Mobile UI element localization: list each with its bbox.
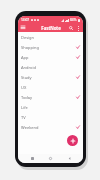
- button[interactable]: Weekend: [18, 122, 83, 132]
- button[interactable]: Design: [18, 32, 83, 42]
- staticText: Weekend: [21, 125, 76, 130]
- staticText: Android: [21, 65, 80, 70]
- button[interactable]: Today: [18, 92, 83, 102]
- button[interactable]: Back: [65, 154, 74, 163]
- button[interactable]: Open navigation menu: [18, 23, 27, 32]
- button[interactable]: Study: [18, 72, 83, 82]
- staticText: Design: [21, 35, 80, 40]
- staticText: Life: [21, 105, 80, 110]
- button[interactable]: Shopping: [18, 42, 83, 52]
- staticText: 14:07: [21, 18, 30, 22]
- staticText: 84%: [70, 18, 77, 22]
- button[interactable]: Home: [46, 154, 55, 163]
- staticText: Today: [21, 95, 76, 100]
- button[interactable]: UX: [18, 82, 83, 92]
- button[interactable]: TV: [18, 112, 83, 122]
- staticText: Shopping: [21, 45, 76, 50]
- staticText: App: [21, 55, 76, 60]
- staticText: Study: [21, 75, 76, 80]
- staticText: UX: [21, 85, 80, 90]
- button[interactable]: Life: [18, 102, 83, 112]
- button[interactable]: Android: [18, 62, 83, 72]
- button[interactable]: Search: [67, 24, 75, 32]
- staticText: TV: [21, 115, 80, 120]
- button[interactable]: Recent apps: [28, 154, 37, 163]
- staticText: FastNote: [41, 25, 61, 31]
- button[interactable]: Add note: [67, 135, 78, 146]
- button[interactable]: App: [18, 52, 83, 62]
- button[interactable]: More options: [75, 25, 82, 32]
